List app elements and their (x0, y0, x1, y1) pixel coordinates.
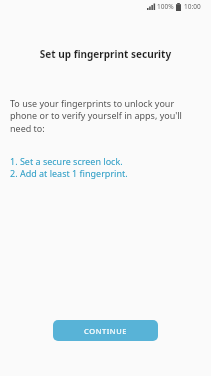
staticText: Set up fingerprint security (0, 47, 211, 61)
staticText: 10:00 (184, 2, 201, 11)
staticText: CONTINUE (84, 326, 128, 336)
button[interactable]: CONTINUE (53, 320, 158, 341)
staticText: To use your fingerprints to unlock your … (10, 97, 182, 135)
staticText: 1. Set a secure screen lock. 2. Add at l… (10, 155, 128, 180)
staticText: 100% (157, 2, 174, 11)
